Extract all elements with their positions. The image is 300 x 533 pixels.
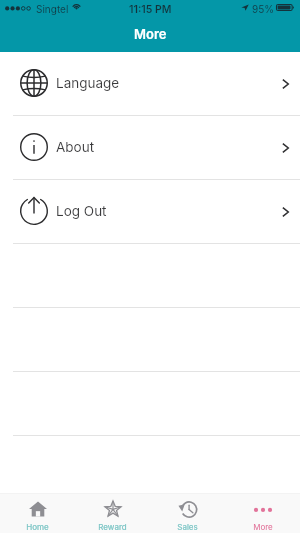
staticText: More (134, 26, 167, 42)
staticText: Sales (177, 522, 198, 532)
staticText: 11:15 PM (129, 3, 172, 16)
button[interactable]: Home (0, 494, 75, 533)
staticText: More (253, 522, 273, 532)
button[interactable]: Reward (75, 494, 150, 533)
staticText: Home (26, 522, 49, 532)
button[interactable]: Language (0, 52, 300, 115)
button[interactable]: Log Out (0, 180, 300, 243)
staticText: Singtel (36, 3, 69, 15)
staticText: Reward (98, 522, 127, 532)
staticText: 95% (252, 3, 275, 15)
button[interactable]: About (0, 116, 300, 179)
staticText: Language (56, 75, 120, 91)
staticText: About (56, 139, 95, 155)
button[interactable]: More (225, 494, 300, 533)
staticText: Log Out (56, 203, 107, 219)
button[interactable]: Sales (150, 494, 225, 533)
